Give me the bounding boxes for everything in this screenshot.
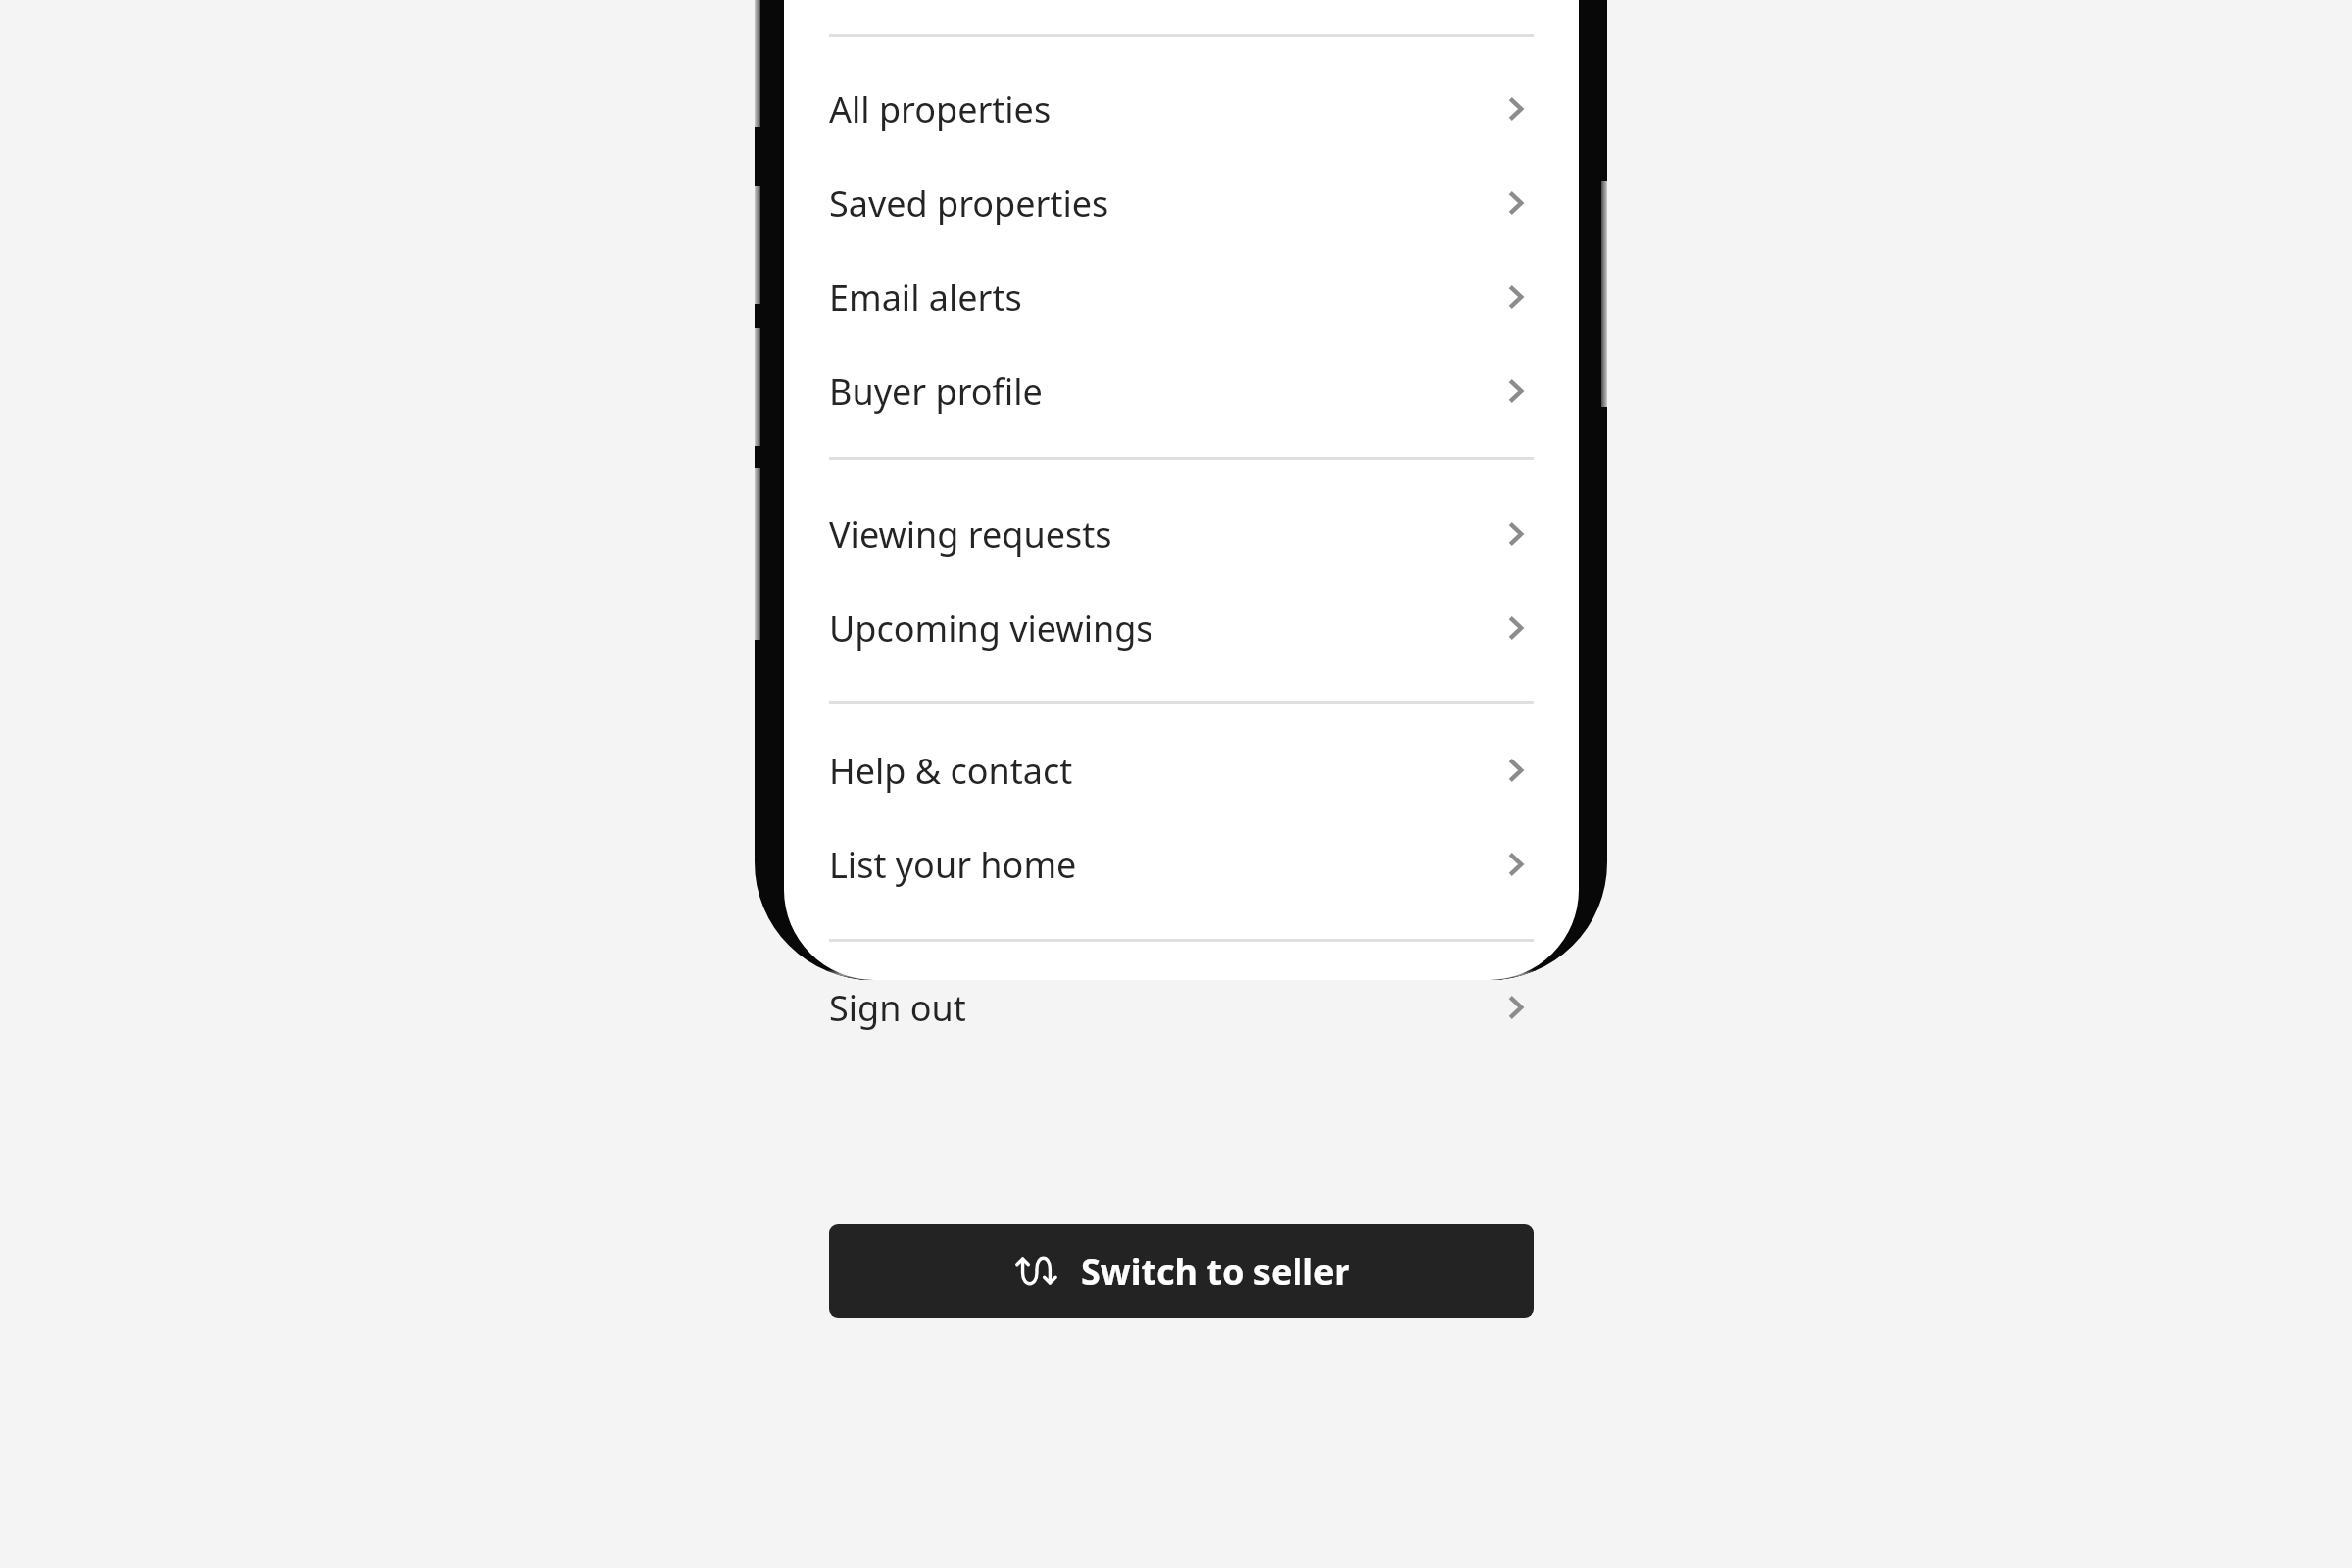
staticText: Buyer profile — [829, 367, 1498, 416]
button[interactable]: List your home — [829, 817, 1534, 911]
button[interactable]: Viewing requests — [829, 487, 1534, 581]
button[interactable]: Help & contact — [829, 723, 1534, 817]
button[interactable]: Buyer profile — [829, 344, 1534, 438]
staticText: Email alerts — [829, 273, 1498, 321]
staticText: Saved properties — [829, 179, 1498, 227]
button[interactable]: Sign out — [829, 960, 1534, 1054]
staticText: Sign out — [829, 984, 1498, 1032]
staticText: Viewing requests — [829, 511, 1498, 559]
staticText: Switch to seller — [1081, 1248, 1350, 1296]
button[interactable]: Email alerts — [829, 250, 1534, 344]
staticText: Upcoming viewings — [829, 605, 1498, 653]
button[interactable]: All properties — [829, 62, 1534, 156]
button[interactable]: Saved properties — [829, 156, 1534, 250]
staticText: Help & contact — [829, 747, 1498, 795]
staticText: All properties — [829, 85, 1498, 133]
button[interactable]: Upcoming viewings — [829, 581, 1534, 675]
button[interactable]: Switch to seller — [829, 1224, 1534, 1318]
other: Switch to seller — [1012, 1248, 1059, 1295]
staticText: List your home — [829, 841, 1498, 889]
